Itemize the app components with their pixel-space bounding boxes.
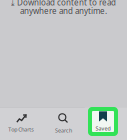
staticText: Saved	[95, 125, 110, 132]
staticText: ⤓ Download content to read	[11, 0, 116, 8]
button[interactable]: Top Charts	[0, 107, 42, 139]
button[interactable]: Search	[42, 107, 85, 139]
staticText: anywhere and anytime.	[20, 6, 107, 16]
button[interactable]: Saved	[88, 107, 118, 136]
staticText: Search	[55, 127, 72, 134]
staticText: Top Charts	[8, 126, 34, 133]
